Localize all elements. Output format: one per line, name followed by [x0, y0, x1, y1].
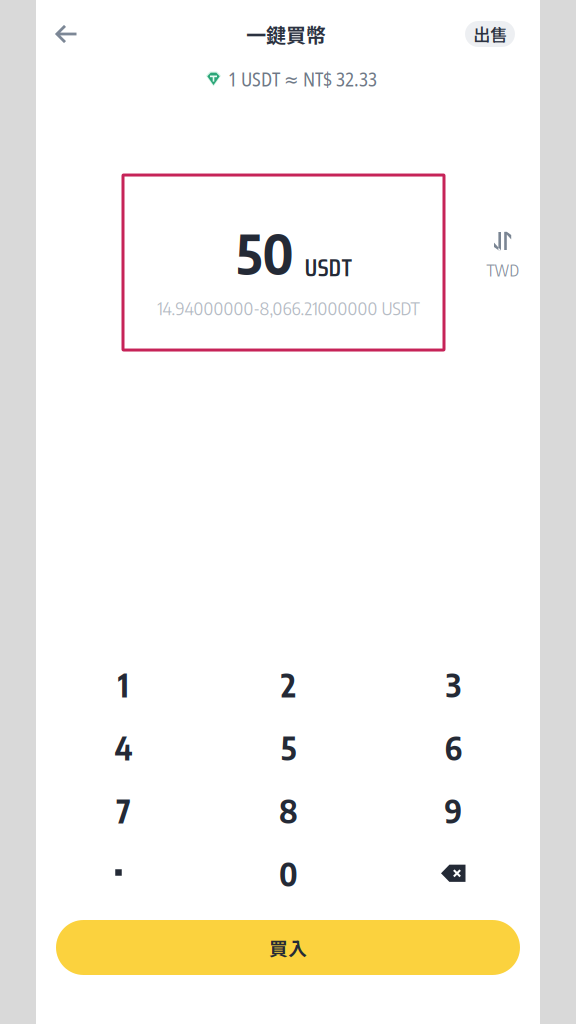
- button[interactable]: 買入: [56, 920, 520, 975]
- button[interactable]: Switch to TWD: [471, 228, 535, 284]
- staticText: 8: [279, 790, 298, 830]
- button[interactable]: 9: [371, 779, 536, 842]
- staticText: 50: [236, 220, 293, 286]
- staticText: 6: [444, 727, 462, 767]
- button[interactable]: 6: [371, 716, 536, 779]
- button[interactable]: 1: [41, 653, 206, 716]
- staticText: TWD: [486, 260, 519, 280]
- staticText: 7: [116, 790, 130, 830]
- staticText: 0: [279, 853, 298, 893]
- staticText: 14.94000000-8,066.21000000 USDT: [157, 297, 419, 319]
- staticText: 4: [114, 727, 132, 767]
- staticText: 1 USDT ≈ NT$ 32.33: [228, 66, 377, 92]
- button[interactable]: Back: [43, 11, 89, 57]
- staticText: 出售: [473, 21, 507, 47]
- button[interactable]: 0: [206, 842, 371, 905]
- staticText: 一鍵買幣: [246, 19, 326, 48]
- button[interactable]: 8: [206, 779, 371, 842]
- staticText: 1: [118, 664, 129, 704]
- button[interactable]: Decimal point: [41, 842, 206, 905]
- button[interactable]: 3: [371, 653, 536, 716]
- button[interactable]: Delete: [371, 842, 536, 905]
- button[interactable]: 4: [41, 716, 206, 779]
- button[interactable]: 7: [41, 779, 206, 842]
- staticText: 買入: [269, 934, 307, 961]
- staticText: USDT: [304, 247, 352, 287]
- staticText: 2: [281, 664, 296, 704]
- button[interactable]: 2: [206, 653, 371, 716]
- staticText: 3: [446, 664, 461, 704]
- button[interactable]: 出售: [465, 21, 515, 47]
- staticText: 9: [444, 790, 462, 830]
- staticText: 5: [281, 727, 296, 767]
- button[interactable]: 5: [206, 716, 371, 779]
